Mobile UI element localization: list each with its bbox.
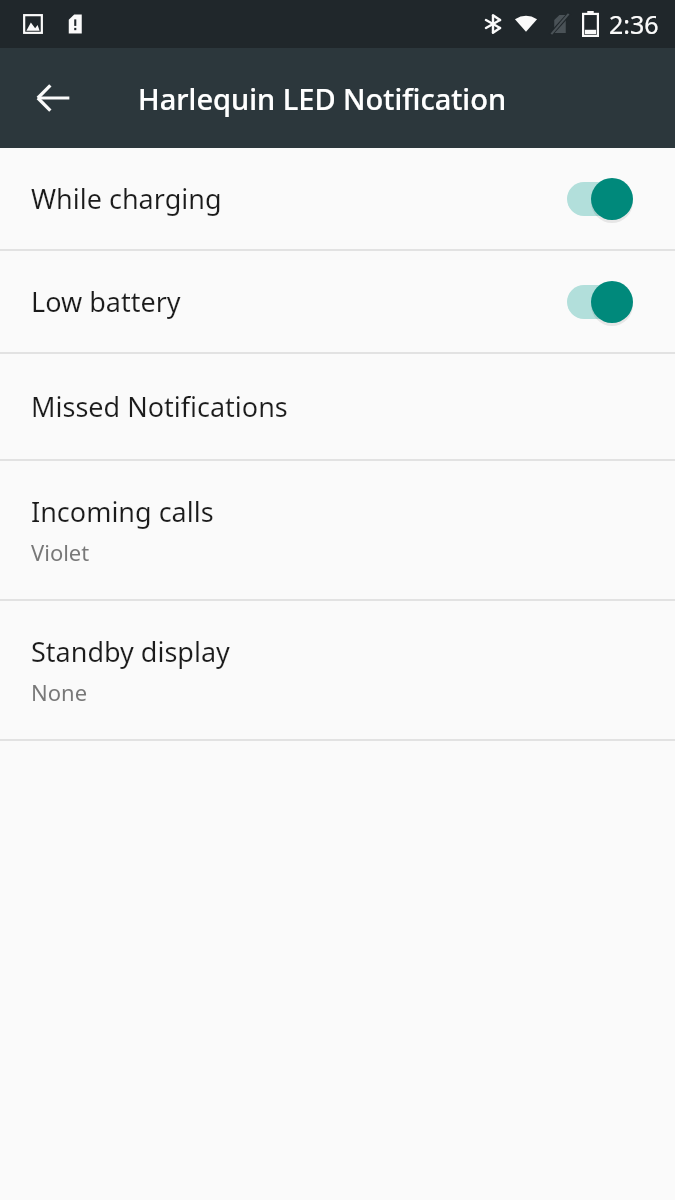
button[interactable]: Missed Notifications (0, 354, 675, 459)
button[interactable]: Back (14, 59, 92, 137)
button[interactable]: Toggle (563, 175, 643, 223)
staticText: Low battery (31, 283, 563, 320)
button[interactable]: Incoming calls (0, 461, 675, 599)
staticText: While charging (31, 180, 563, 217)
staticText: Violet (31, 537, 90, 567)
staticText: Incoming calls (31, 493, 214, 530)
button[interactable]: Standby display (0, 601, 675, 739)
staticText: 2:36 (609, 7, 659, 41)
button[interactable]: Toggle (563, 278, 643, 326)
staticText: Missed Notifications (31, 388, 288, 425)
button[interactable]: While charging (0, 148, 675, 249)
staticText: Standby display (31, 633, 230, 670)
staticText: Harlequin LED Notification (138, 79, 507, 118)
button[interactable]: Low battery (0, 251, 675, 352)
staticText: None (31, 677, 88, 707)
